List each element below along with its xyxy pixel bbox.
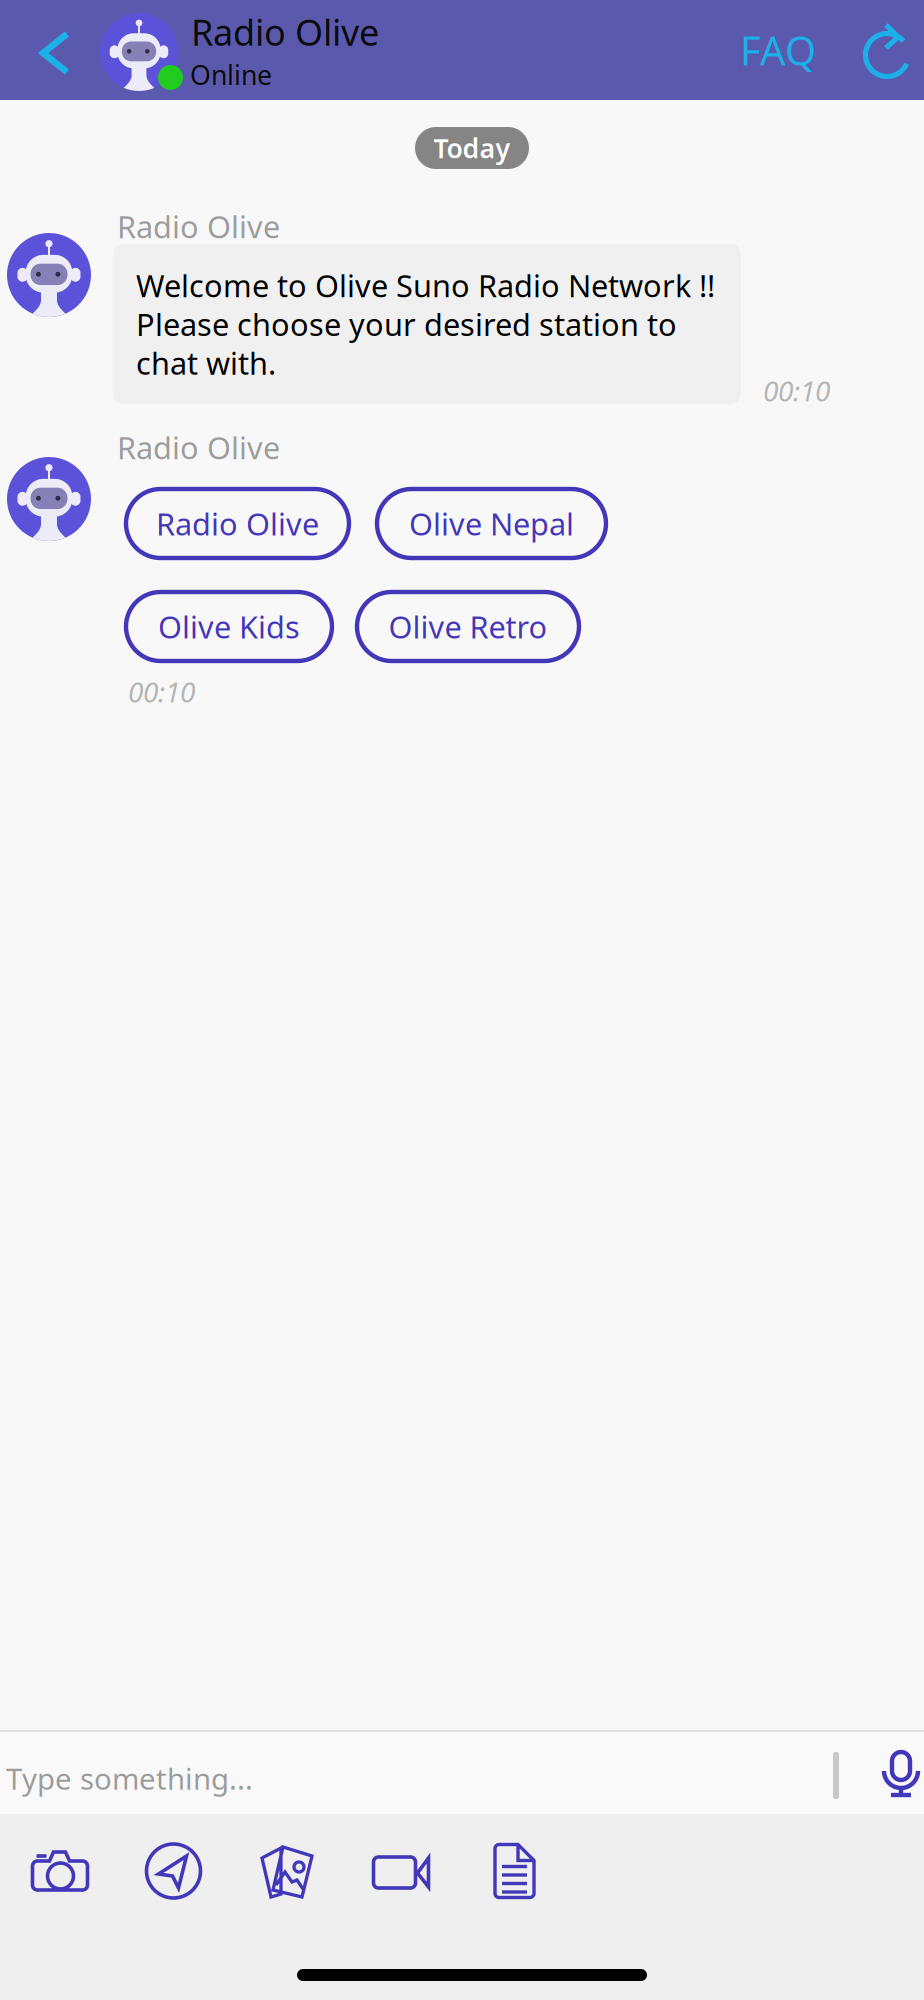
button[interactable]: Voice message	[868, 1730, 924, 1814]
staticText: Radio Olive	[117, 427, 280, 468]
button[interactable]: Location	[134, 1836, 214, 1906]
button[interactable]: Back	[3, 0, 77, 100]
staticText: Olive Kids	[158, 606, 300, 647]
staticText: 00:10	[763, 372, 830, 409]
staticText: FAQ	[740, 23, 816, 76]
button[interactable]: Photos	[259, 1845, 339, 1915]
button[interactable]: Olive Retro	[357, 592, 579, 661]
staticText: Today	[433, 130, 510, 166]
staticText: Olive Retro	[388, 606, 547, 647]
button[interactable]: Video	[361, 1839, 441, 1909]
staticText: Radio Olive	[191, 8, 379, 56]
staticText: Olive Nepal	[409, 503, 574, 544]
button[interactable]: Olive Nepal	[377, 489, 606, 558]
button[interactable]: Radio Olive	[0, 0, 300, 100]
button[interactable]: FAQ	[726, 0, 830, 100]
button[interactable]: Radio Olive	[126, 489, 349, 558]
staticText: Welcome to Olive Suno Radio Network !! P…	[136, 265, 715, 383]
staticText: Type something...	[6, 1759, 253, 1798]
button[interactable]: Olive Kids	[126, 592, 332, 661]
staticText: Radio Olive	[156, 503, 319, 544]
staticText: 00:10	[128, 673, 195, 710]
staticText: Online	[190, 57, 272, 92]
button[interactable]: Document	[476, 1836, 556, 1906]
button[interactable]: Camera	[20, 1839, 100, 1909]
button[interactable]: Refresh	[844, 0, 924, 100]
button[interactable]: Today	[415, 127, 529, 169]
staticText: Radio Olive	[117, 206, 280, 247]
